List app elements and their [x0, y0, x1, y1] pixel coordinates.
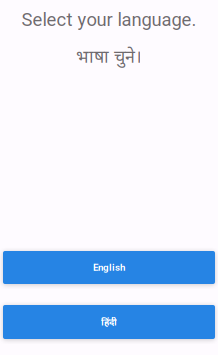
staticText: हिंदी [101, 316, 117, 328]
staticText: English [93, 262, 125, 273]
button[interactable]: हिंदी [3, 305, 215, 339]
staticText: Select your language. [21, 9, 196, 31]
button[interactable]: English [3, 251, 215, 284]
staticText: भाषा चुने। [76, 44, 142, 68]
